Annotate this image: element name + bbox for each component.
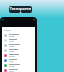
button[interactable]	[2, 38, 35, 43]
button[interactable]: Transparent background	[9, 6, 32, 13]
button[interactable]	[2, 63, 35, 68]
button[interactable]	[2, 58, 35, 63]
button[interactable]	[2, 48, 35, 53]
staticText: Transparent background	[9, 6, 32, 13]
button[interactable]	[2, 68, 35, 72]
button[interactable]	[2, 43, 35, 48]
button[interactable]	[2, 33, 35, 38]
button[interactable]	[2, 19, 35, 27]
button[interactable]	[2, 53, 35, 58]
